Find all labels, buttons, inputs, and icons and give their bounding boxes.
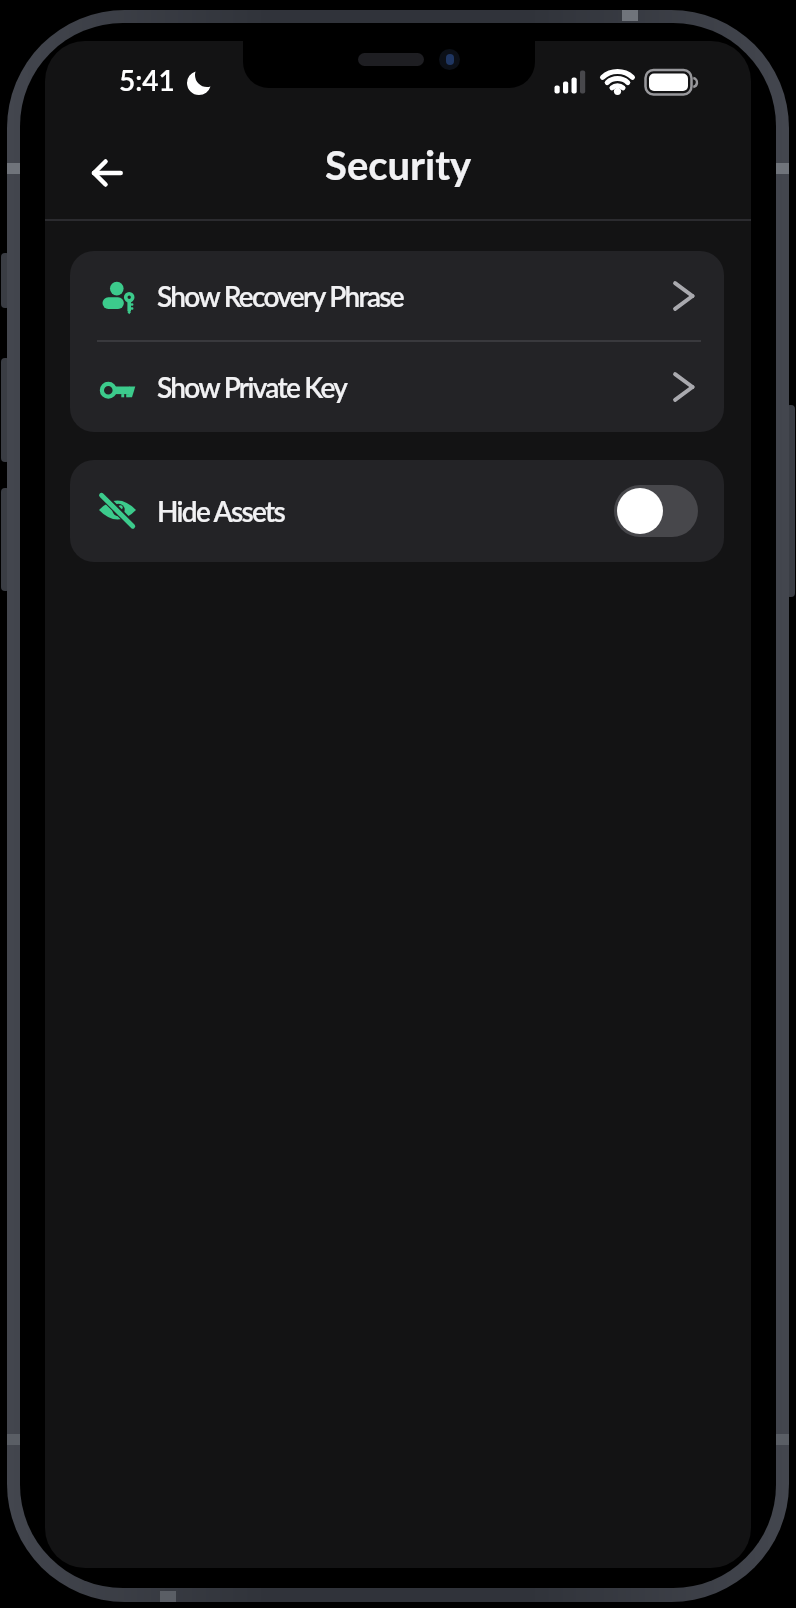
button[interactable]: [89, 155, 125, 191]
button[interactable]: Show Recovery Phrase: [70, 251, 724, 340]
button[interactable]: Show Private Key: [70, 342, 724, 432]
button[interactable]: Hide Assets: [70, 460, 724, 562]
staticText: 5:41: [119, 63, 175, 97]
staticText: Show Private Key: [157, 370, 347, 404]
staticText: Show Recovery Phrase: [157, 279, 403, 313]
staticText: Hide Assets: [157, 494, 285, 528]
button[interactable]: [614, 485, 698, 537]
staticText: Security: [325, 141, 472, 189]
